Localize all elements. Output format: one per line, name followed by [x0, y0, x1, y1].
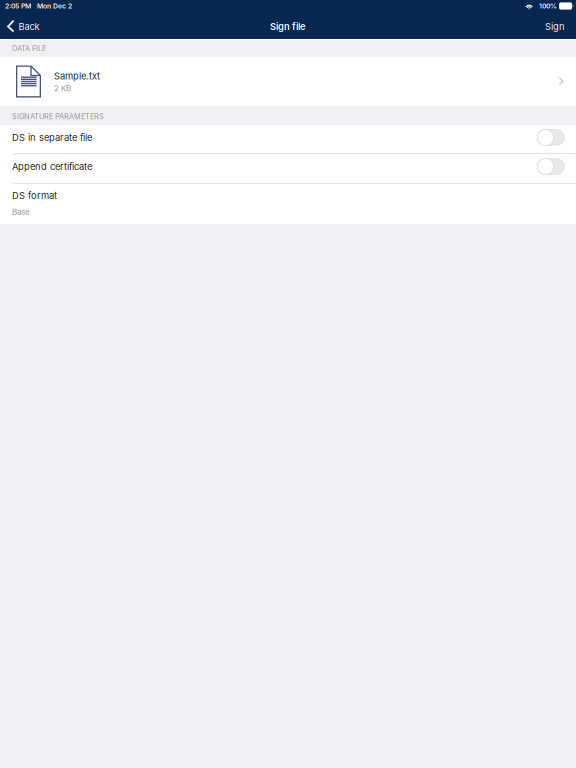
- staticText: Sign file: [270, 21, 306, 32]
- button[interactable]: DS in separate file: [0, 125, 576, 153]
- staticText: DS in separate file: [12, 132, 92, 143]
- staticText: Append certificate: [12, 161, 92, 172]
- staticText: DATA FILE: [12, 44, 46, 53]
- staticText: 2:05 PM: [5, 2, 31, 10]
- button[interactable]: DS format: [0, 184, 576, 224]
- button[interactable]: Sign: [534, 13, 576, 39]
- staticText: Mon Dec 2: [37, 2, 72, 10]
- staticText: 2 KB: [54, 83, 71, 93]
- staticText: Sample.txt: [54, 70, 100, 82]
- staticText: SIGNATURE PARAMETERS: [12, 112, 104, 121]
- staticText: Sign: [545, 21, 565, 32]
- staticText: Base: [12, 207, 30, 217]
- button[interactable]: Sample.txt: [0, 57, 576, 106]
- button[interactable]: Append certificate: [0, 154, 576, 183]
- staticText: DS format: [12, 190, 57, 201]
- staticText: Back: [18, 21, 39, 32]
- staticText: 100%: [539, 2, 557, 10]
- button[interactable]: Back: [0, 13, 45, 39]
